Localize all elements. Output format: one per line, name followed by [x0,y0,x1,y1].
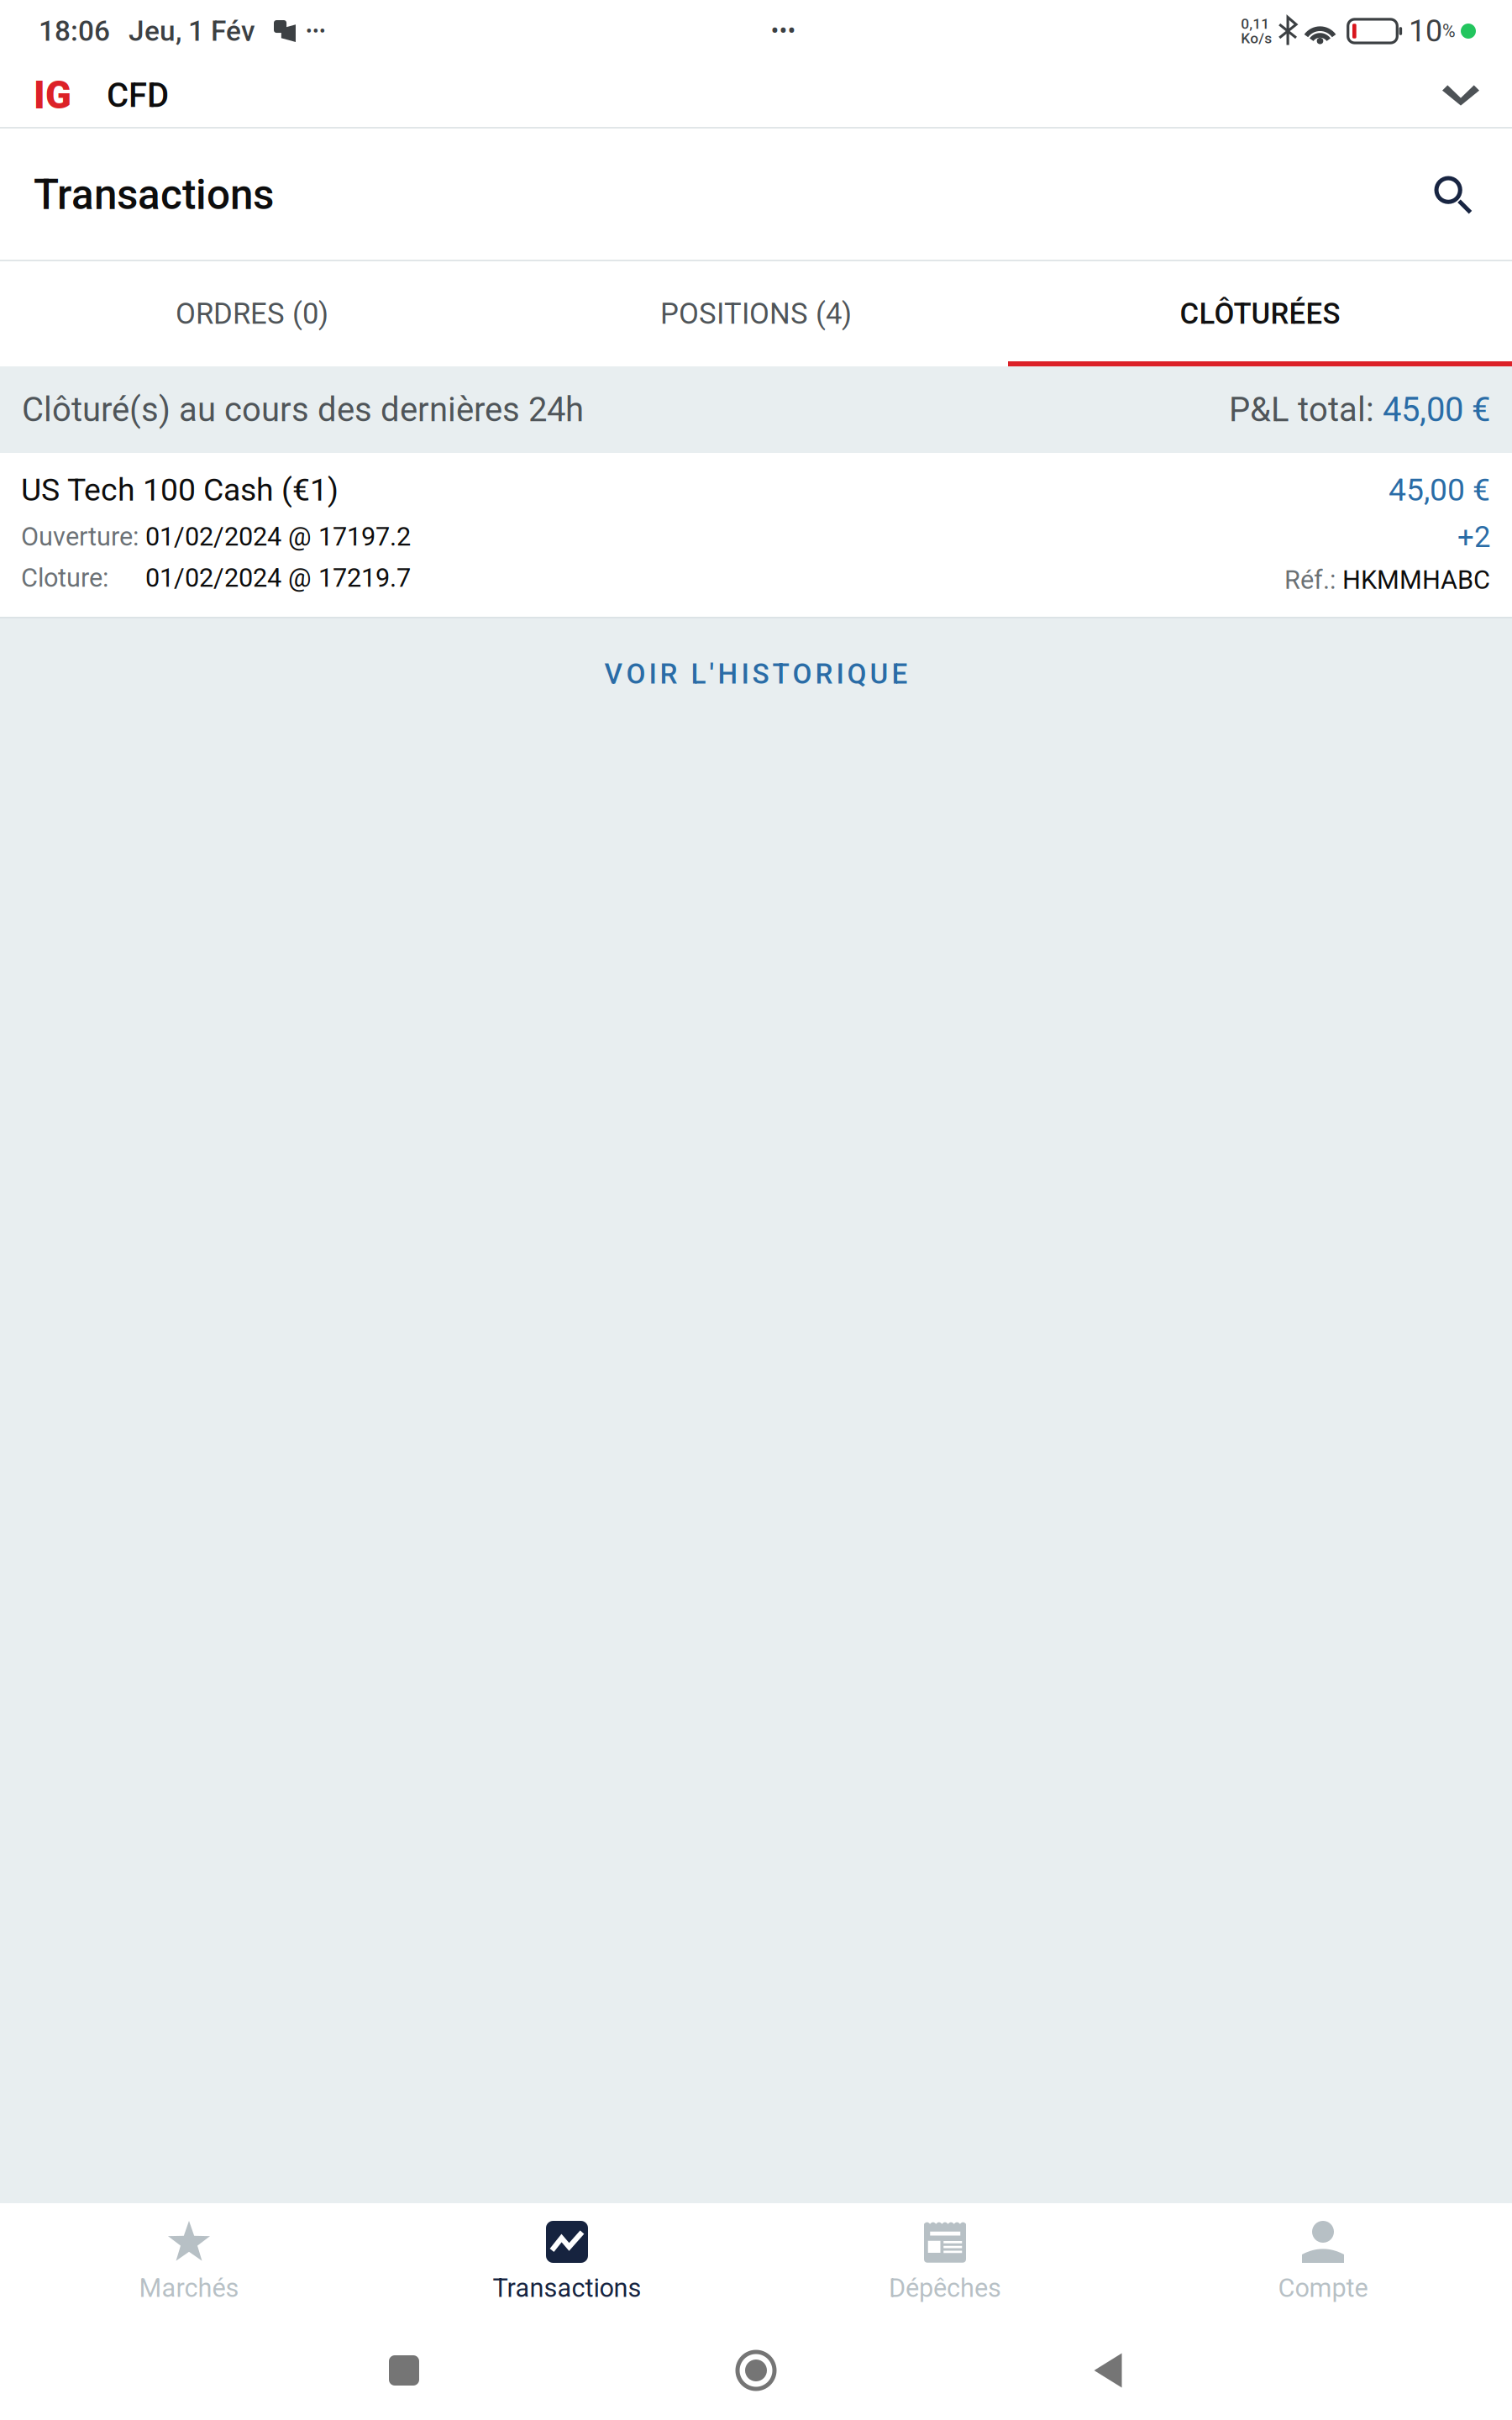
staticText: I [836,658,844,690]
staticText: Dépêches [889,2273,1001,2303]
staticText: Transactions [34,171,274,219]
staticText: Cloture: [21,563,108,593]
button[interactable]: ORDRES (0) [0,261,504,366]
staticText: ••• [306,20,326,42]
staticText: Réf.: [1284,565,1342,595]
staticText: V [604,658,623,690]
staticText: Transactions [493,2273,641,2303]
button[interactable]: CLÔTURÉES [1008,261,1512,366]
staticText: ' [709,658,714,690]
staticText: Clôturé(s) au cours des dernières 24h [22,390,584,429]
staticText: 45,00 € [1383,390,1490,429]
staticText: 45,00 € [1389,471,1490,508]
button[interactable]: Retour [1074,2343,1142,2398]
button[interactable]: Marchés [0,2203,378,2343]
staticText: P&L total: [1229,390,1383,429]
staticText: Q [847,658,866,690]
staticText: O [793,658,812,690]
staticText: Ouverture: [21,522,139,552]
staticText: 01/02/2024 @ 17219.7 [145,563,411,593]
staticText: POSITIONS (4) [660,297,852,331]
staticText: Compte [1278,2273,1368,2303]
staticText: 01/02/2024 @ 17197.2 [145,522,411,552]
staticText: US Tech 100 Cash (€1) [21,471,339,508]
staticText: U [870,658,888,690]
button[interactable]: Dépêches [756,2203,1134,2343]
staticText: 18:06 [39,15,110,48]
staticText: CLÔTURÉES [1180,297,1340,331]
staticText: Marchés [139,2273,239,2303]
button[interactable]: US Tech 100 Cash (€1) [0,453,1512,618]
button[interactable]: POSITIONS (4) [504,261,1008,366]
staticText: R [660,658,677,690]
button[interactable]: V [0,618,1512,729]
staticText: S [752,658,769,690]
button[interactable]: Rechercher [1404,129,1502,260]
staticText: IG [34,73,71,118]
staticText: +2 [1457,520,1490,554]
staticText: ORDRES (0) [176,297,328,331]
staticText: Jeu, 1 Fév [129,15,255,48]
button[interactable]: Transactions [378,2203,756,2343]
staticText: R [815,658,833,690]
staticText: O [626,658,646,690]
staticText: T [772,658,789,690]
staticText: 0,11 [1241,15,1269,32]
staticText: L [691,658,706,690]
staticText: E [892,658,908,690]
staticText: 10 [1409,13,1442,49]
staticText: CFD [107,76,169,115]
staticText: H [718,658,738,690]
staticText: I [741,658,749,690]
staticText: I [649,658,656,690]
button[interactable]: Accueil [722,2343,790,2398]
staticText: % [1442,21,1456,42]
button[interactable]: Compte [1134,2203,1512,2343]
staticText: HKMMHABC [1342,565,1490,595]
staticText: ••• [771,17,796,46]
button[interactable]: Applications récentes [370,2343,438,2398]
button[interactable]: Changer de compte [1415,62,1507,129]
staticText: Ko/s [1241,30,1272,47]
